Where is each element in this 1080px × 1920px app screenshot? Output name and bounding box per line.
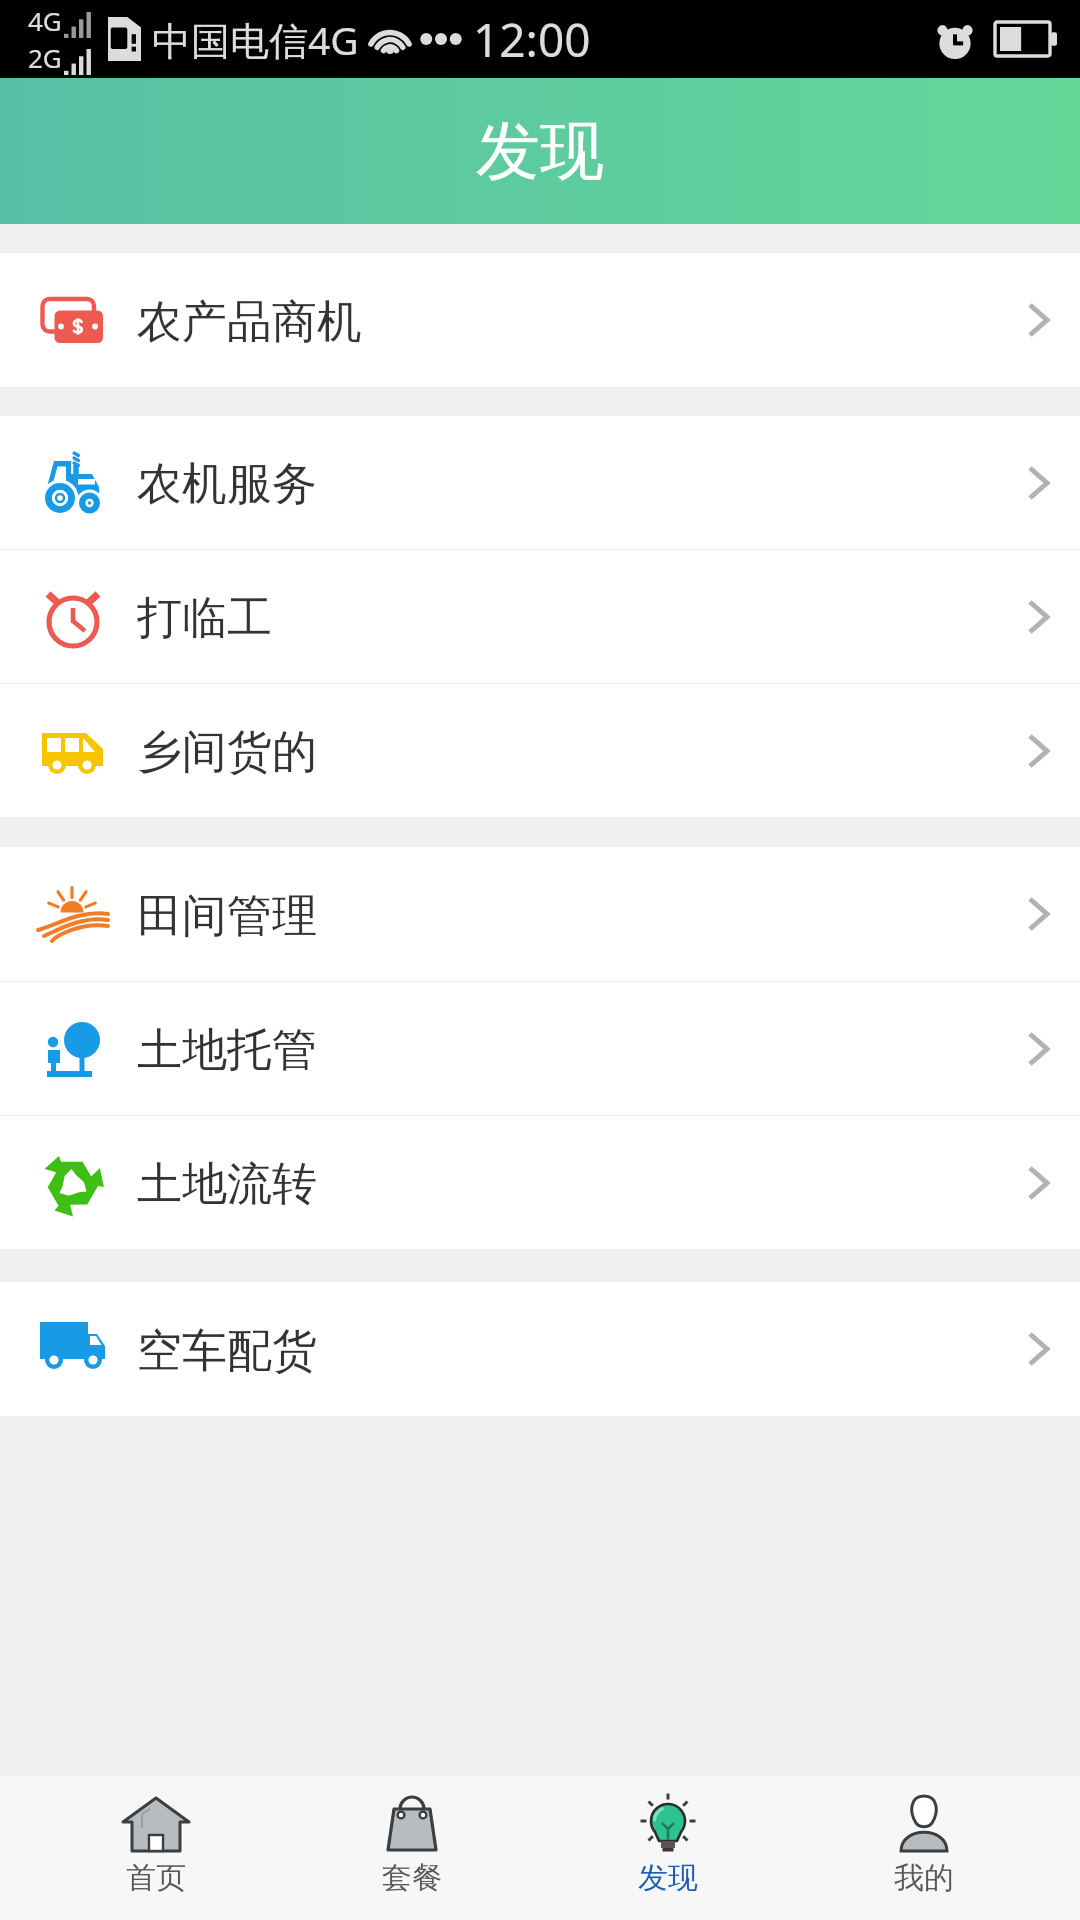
- staticText: 土地托管: [137, 1022, 317, 1079]
- button[interactable]: 打临工: [0, 550, 1080, 683]
- button[interactable]: 田间管理: [0, 847, 1080, 981]
- other: Open: [1028, 466, 1049, 500]
- button[interactable]: 套餐: [284, 1776, 540, 1920]
- button[interactable]: 空车配货: [0, 1282, 1080, 1416]
- staticText: 4G: [28, 3, 62, 38]
- button[interactable]: 农产品商机: [0, 253, 1080, 387]
- staticText: 套餐: [382, 1859, 442, 1897]
- button[interactable]: 土地流转: [0, 1116, 1080, 1249]
- staticText: 我的: [894, 1859, 954, 1897]
- staticText: 首页: [126, 1859, 186, 1897]
- staticText: 发现: [638, 1859, 698, 1897]
- other: Open: [1028, 1332, 1049, 1366]
- other: Open: [1028, 303, 1049, 337]
- other: Open: [1028, 897, 1049, 931]
- button[interactable]: 我的: [796, 1776, 1052, 1920]
- button[interactable]: 乡间货的: [0, 684, 1080, 817]
- button[interactable]: 农机服务: [0, 416, 1080, 549]
- staticText: 中国电信4G: [152, 13, 359, 66]
- button[interactable]: 土地托管: [0, 982, 1080, 1115]
- staticText: 12:00: [473, 8, 591, 71]
- other: Open: [1028, 734, 1049, 768]
- button[interactable]: 首页: [28, 1776, 284, 1920]
- staticText: 发现: [476, 111, 604, 192]
- staticText: 2G: [28, 40, 62, 75]
- other: Open: [1028, 600, 1049, 634]
- staticText: 空车配货: [137, 1323, 317, 1380]
- other: Open: [1028, 1032, 1049, 1066]
- other: Open: [1028, 1166, 1049, 1200]
- staticText: 田间管理: [137, 888, 317, 945]
- staticText: 农产品商机: [137, 294, 362, 351]
- staticText: 打临工: [137, 590, 272, 647]
- staticText: 乡间货的: [137, 724, 317, 781]
- button[interactable]: 发现: [540, 1776, 796, 1920]
- staticText: 农机服务: [137, 456, 317, 513]
- staticText: 土地流转: [137, 1156, 317, 1213]
